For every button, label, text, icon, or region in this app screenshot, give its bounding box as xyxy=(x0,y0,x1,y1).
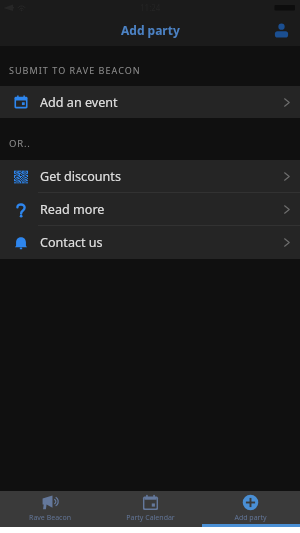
button[interactable]: Add an event xyxy=(0,86,300,118)
button[interactable]: Get discounts xyxy=(0,160,300,193)
button[interactable]: Rave Beacon xyxy=(0,491,100,527)
staticText: Read more xyxy=(40,201,105,218)
button[interactable]: Contact us xyxy=(0,226,300,259)
staticText: OR.. xyxy=(9,137,31,150)
staticText: Add party xyxy=(121,22,180,38)
button[interactable]: Read more xyxy=(0,193,300,226)
staticText: Contact us xyxy=(40,234,103,251)
staticText: Get discounts xyxy=(40,168,121,185)
staticText: Rave Beacon xyxy=(29,513,71,523)
staticText: Add an event xyxy=(40,94,118,111)
button[interactable]: Add party xyxy=(200,491,300,527)
staticText: SUBMIT TO RAVE BEACON xyxy=(9,64,141,76)
staticText: Add party xyxy=(234,513,267,523)
staticText: Party Calendar xyxy=(126,513,175,523)
button[interactable]: Account xyxy=(268,17,294,43)
button[interactable]: Party Calendar xyxy=(100,491,200,527)
